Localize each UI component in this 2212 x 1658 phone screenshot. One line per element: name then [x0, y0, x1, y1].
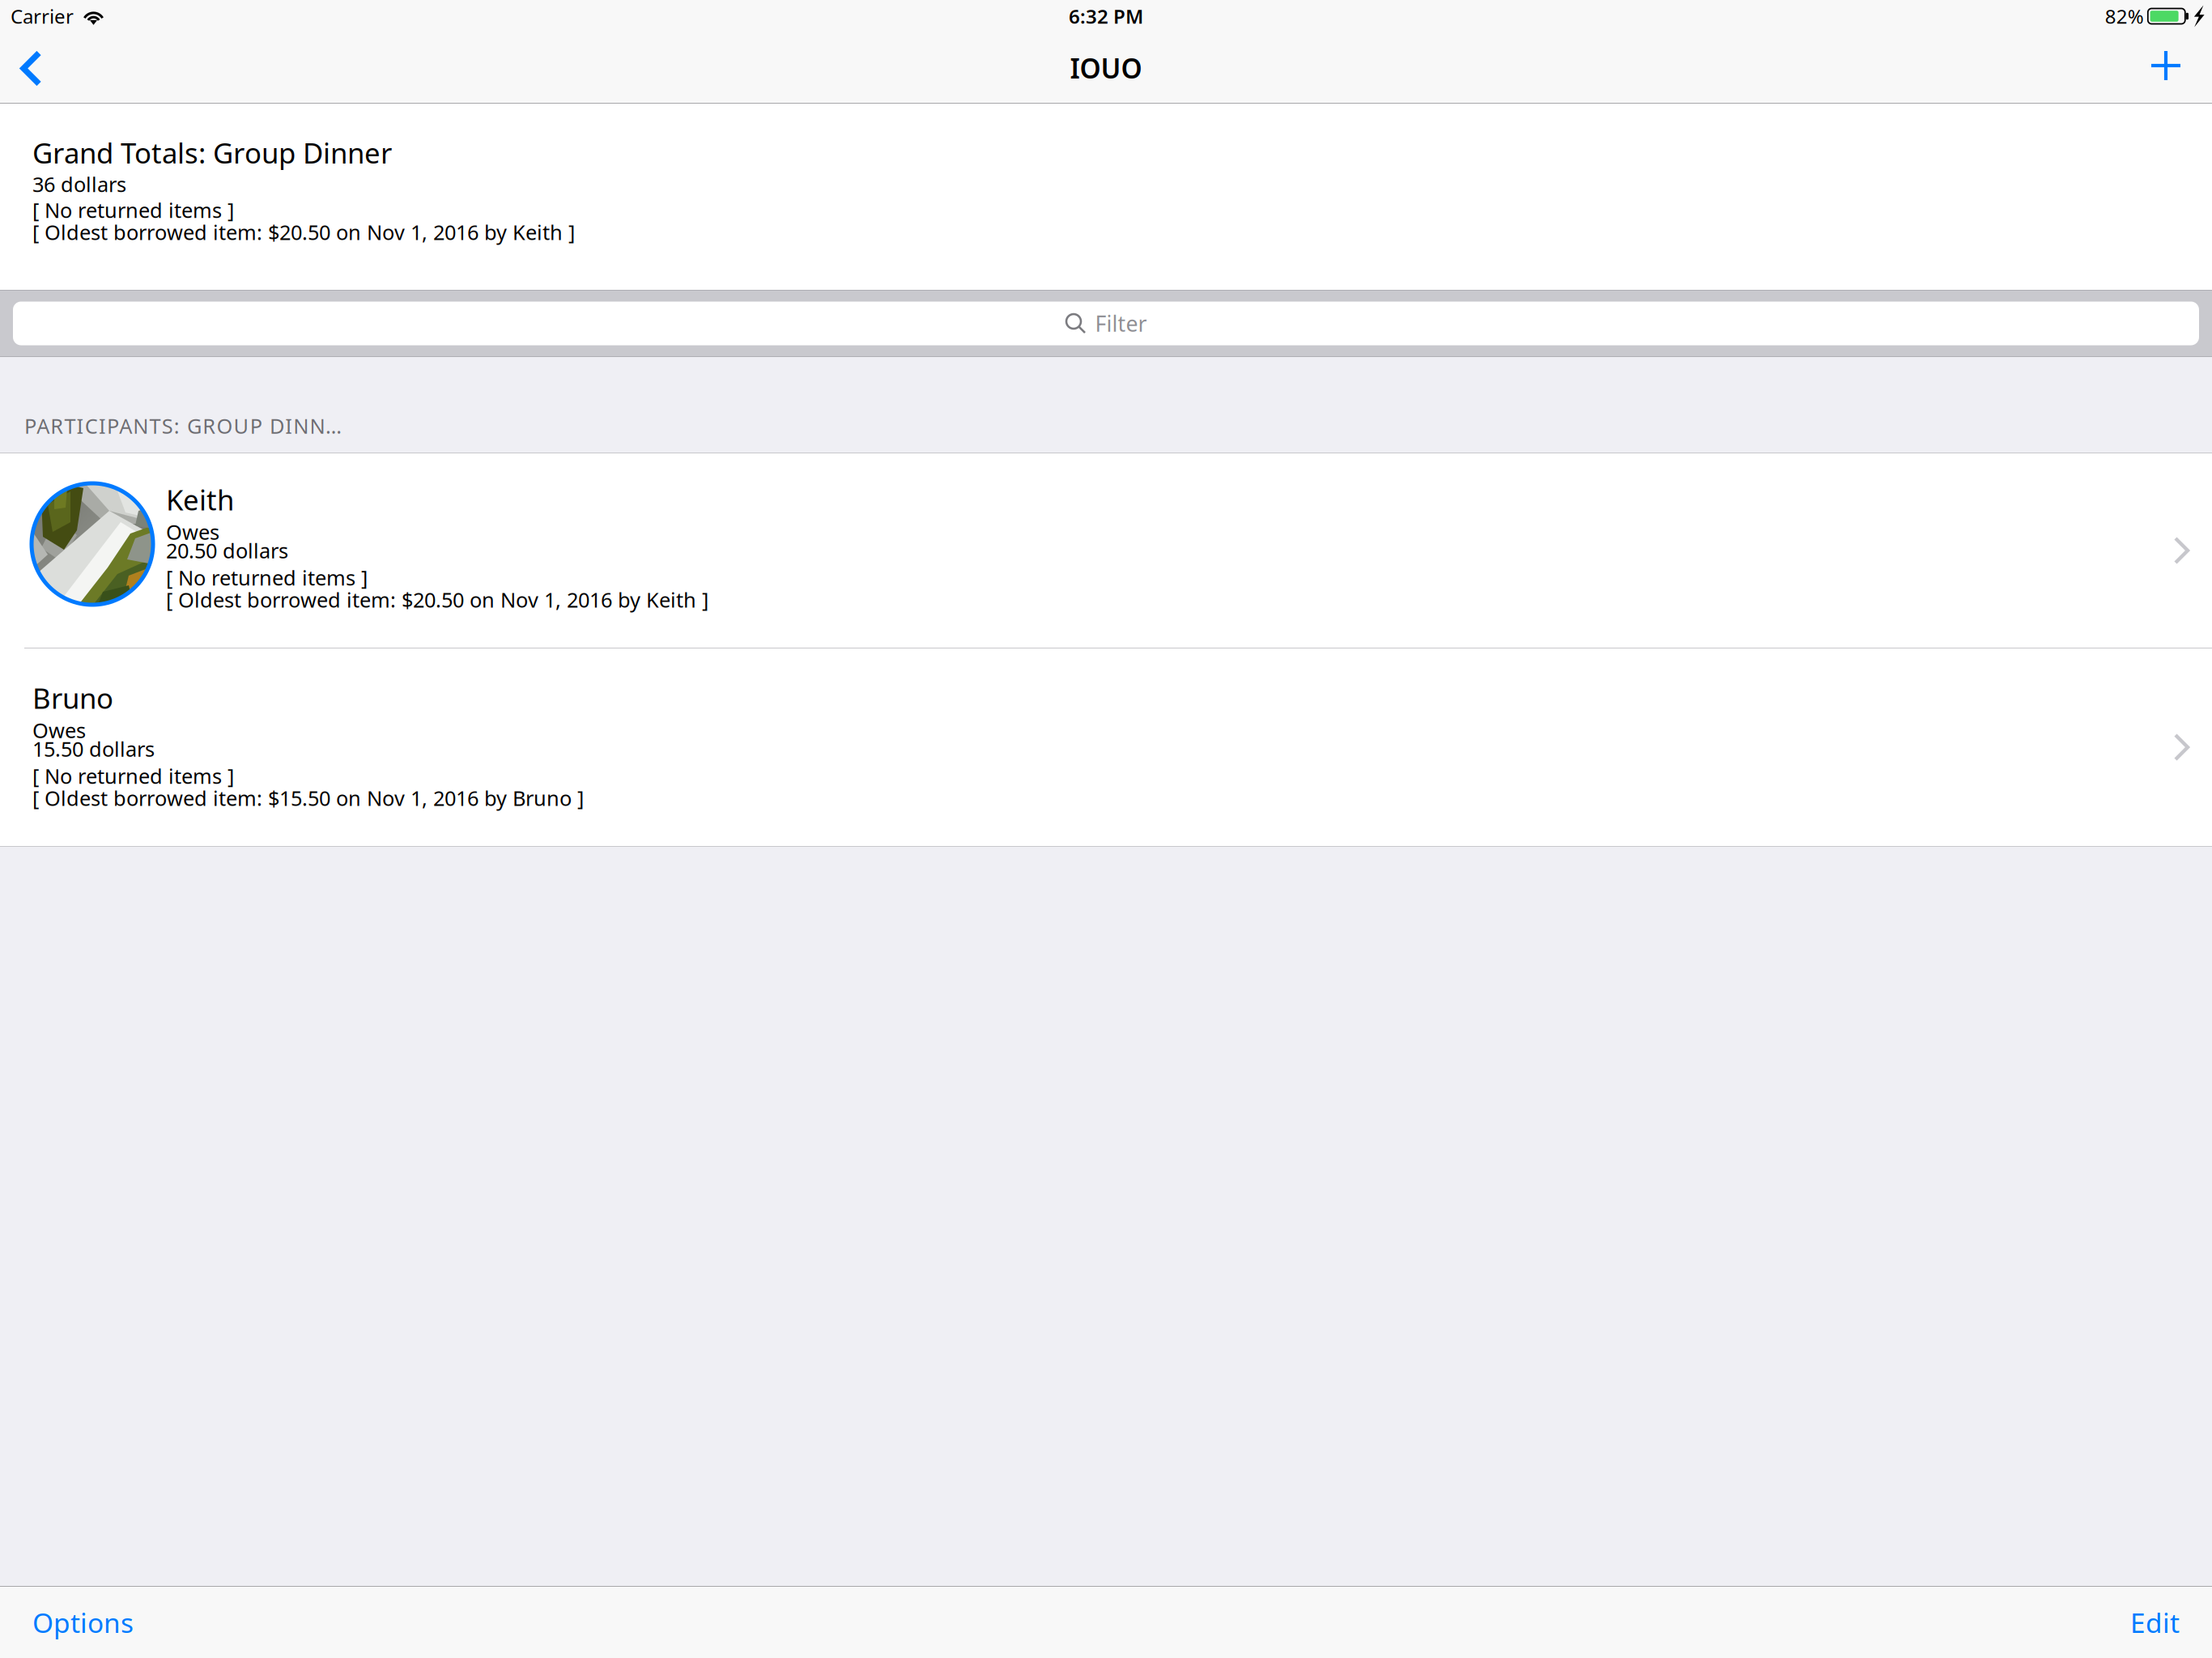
staticText: [ No returned items ]	[32, 196, 234, 224]
staticText: Edit	[2130, 1604, 2180, 1640]
staticText: [ No returned items ]	[166, 564, 368, 591]
button[interactable]: Back	[6, 32, 62, 104]
button[interactable]: Add	[2138, 32, 2194, 104]
button[interactable]: Keith	[0, 453, 2212, 648]
staticText: Options	[32, 1604, 134, 1640]
button[interactable]: Bruno	[0, 648, 2212, 846]
staticText: 20.50 dollars	[166, 537, 288, 564]
staticText: [ Oldest borrowed item: $20.50 on Nov 1,…	[166, 586, 708, 613]
staticText: Owes	[166, 518, 219, 545]
staticText: IOUO	[1070, 50, 1142, 86]
staticText: Bruno	[32, 679, 113, 716]
staticText: 36 dollars	[32, 170, 126, 198]
staticText: Owes	[32, 716, 86, 744]
staticText: [ No returned items ]	[32, 762, 234, 789]
staticText: [ Oldest borrowed item: $15.50 on Nov 1,…	[32, 784, 584, 812]
staticText: 15.50 dollars	[32, 735, 155, 762]
staticText: 6:32 PM	[1069, 3, 1143, 29]
staticText: Grand Totals: Group Dinner	[32, 134, 392, 171]
staticText: PARTICIPANTS: GROUP DINNER	[24, 412, 351, 439]
staticText: Filter	[1095, 309, 1147, 338]
staticText: Keith	[166, 481, 234, 518]
button[interactable]: Options	[16, 1587, 150, 1658]
staticText: 82%	[2105, 3, 2144, 29]
button[interactable]: Filter	[0, 290, 2212, 357]
staticText: Carrier	[11, 3, 74, 29]
staticText: [ Oldest borrowed item: $20.50 on Nov 1,…	[32, 219, 575, 246]
button[interactable]: Edit	[2114, 1587, 2196, 1658]
